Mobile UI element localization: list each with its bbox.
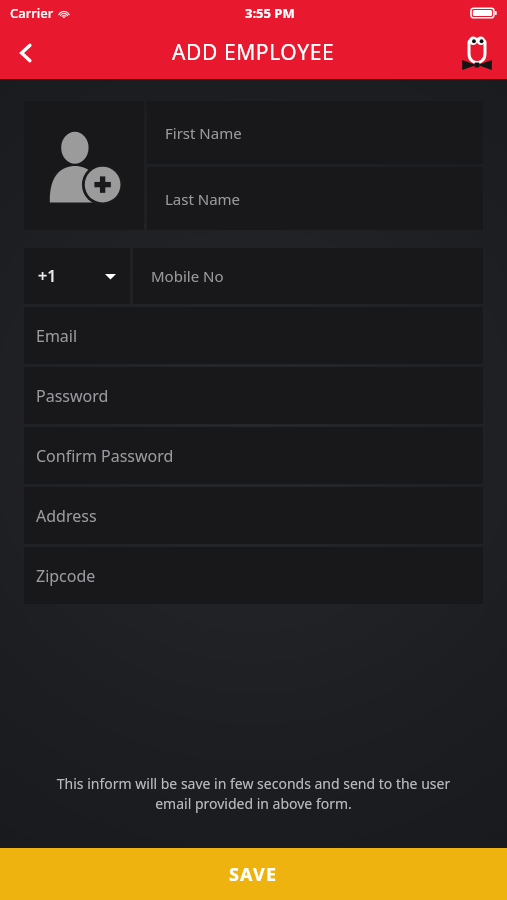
button[interactable]: Password [24, 367, 483, 424]
button[interactable]: Mobile No [133, 248, 483, 304]
staticText: 3:55 PM [245, 4, 295, 22]
button[interactable]: Address [24, 487, 483, 544]
button[interactable]: Last Name [147, 167, 483, 230]
staticText: Carrier [10, 4, 54, 22]
button[interactable]: Back [0, 27, 52, 79]
staticText: First Name [165, 123, 242, 143]
staticText: ADD EMPLOYEE [172, 38, 335, 67]
button[interactable]: Email [24, 307, 483, 364]
staticText: Password [36, 385, 109, 407]
button[interactable]: Confirm Password [24, 427, 483, 484]
staticText: Last Name [165, 189, 241, 209]
staticText: Confirm Password [36, 445, 174, 467]
staticText: SAVE [229, 862, 278, 887]
button[interactable]: Add photo [24, 101, 144, 230]
staticText: Zipcode [36, 565, 96, 587]
staticText: +1 [38, 265, 57, 287]
staticText: This inform will be save in few seconds … [26, 774, 481, 814]
staticText: Mobile No [151, 266, 224, 286]
staticText: Email [36, 325, 78, 347]
button[interactable]: SAVE [0, 848, 507, 900]
button[interactable]: App logo [453, 29, 501, 77]
button[interactable]: Zipcode [24, 547, 483, 604]
button[interactable]: +1 [24, 248, 130, 304]
staticText: Address [36, 505, 97, 527]
button[interactable]: First Name [147, 101, 483, 164]
